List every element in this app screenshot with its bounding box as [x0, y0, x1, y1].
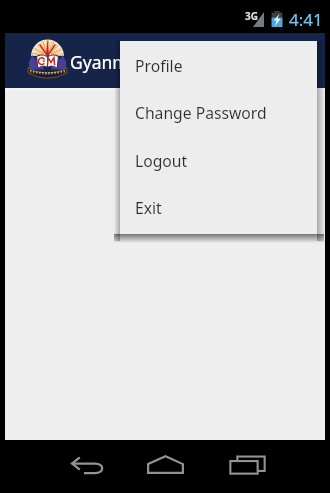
- staticText: Gyanmandir: [70, 50, 172, 74]
- button[interactable]: Gyanmandir: [5, 33, 215, 88]
- staticText: 3G: [245, 9, 258, 23]
- staticText: 4:41: [289, 8, 323, 31]
- button[interactable]: Logout: [120, 137, 317, 184]
- button[interactable]: Exit: [120, 184, 317, 231]
- staticText: Exit: [135, 197, 162, 218]
- button[interactable]: Profile: [120, 42, 317, 89]
- button[interactable]: Back: [48, 438, 127, 491]
- staticText: Profile: [135, 55, 183, 76]
- button[interactable]: Home: [126, 438, 205, 491]
- button[interactable]: Recents: [208, 438, 287, 491]
- staticText: Logout: [135, 150, 188, 171]
- button[interactable]: Change Password: [120, 89, 317, 136]
- staticText: Change Password: [135, 102, 267, 123]
